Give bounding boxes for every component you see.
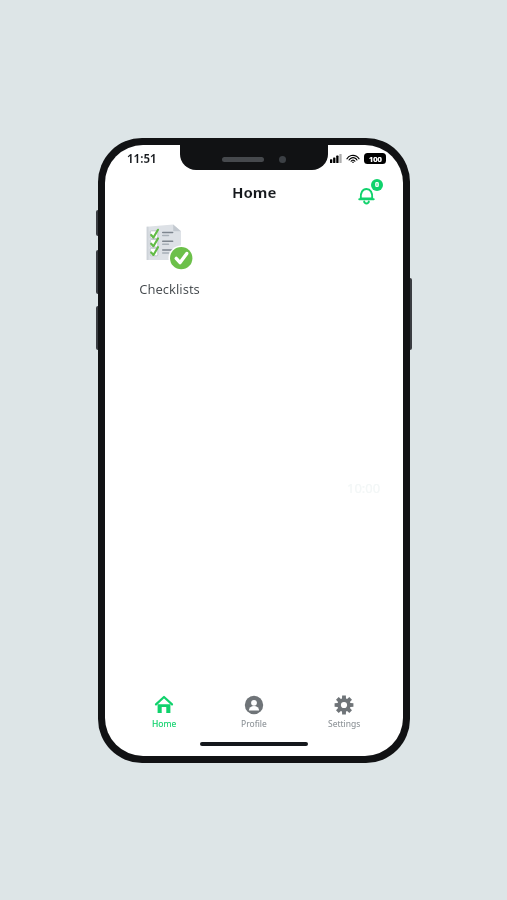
staticText: 100 <box>369 154 382 164</box>
staticText: Home <box>232 182 277 202</box>
staticText: Checklists <box>139 280 200 298</box>
staticText: Settings <box>328 718 361 730</box>
button[interactable]: Profile <box>209 686 299 738</box>
staticText: Home <box>152 718 177 730</box>
button[interactable]: Home <box>119 686 209 738</box>
button[interactable]: Notifications <box>353 175 387 209</box>
staticText: 11:51 <box>127 151 157 167</box>
button[interactable]: Checklists <box>127 218 211 302</box>
staticText: Profile <box>241 718 267 730</box>
staticText: 0 <box>375 180 380 190</box>
button[interactable]: Settings <box>299 686 389 738</box>
staticText: 10:00 <box>347 479 381 497</box>
